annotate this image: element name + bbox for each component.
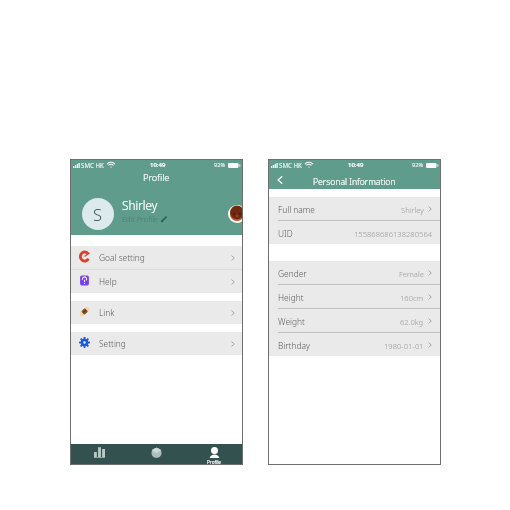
staticText: 10:49 — [150, 161, 166, 169]
button[interactable]: Gender — [269, 261, 440, 284]
button[interactable]: Full name — [269, 197, 440, 220]
button[interactable]: Pet profile — [228, 205, 242, 223]
button[interactable]: Weight — [269, 309, 440, 332]
button[interactable]: Back — [269, 170, 291, 189]
button[interactable]: UID — [269, 221, 440, 244]
button[interactable]: Birthday — [269, 333, 440, 356]
button[interactable]: Statistics — [71, 444, 128, 464]
staticText: 10:49 — [348, 161, 364, 169]
staticText: Birthday — [278, 340, 310, 351]
staticText: Shirley — [401, 205, 424, 215]
button[interactable]: Setting — [71, 332, 242, 355]
staticText: Edit Profile — [122, 214, 158, 224]
staticText: S — [93, 203, 103, 225]
staticText: 160cm — [400, 293, 424, 303]
staticText: UID — [278, 228, 293, 239]
staticText: Profile — [207, 459, 221, 464]
staticText: SMC HK — [279, 161, 302, 169]
button[interactable]: Explore — [128, 444, 185, 464]
staticText: SMC HK — [81, 161, 104, 169]
button[interactable]: Link — [71, 301, 242, 324]
staticText: Gender — [278, 268, 307, 279]
staticText: Height — [278, 292, 304, 303]
staticText: 92% — [214, 161, 226, 169]
staticText: 62.0kg — [400, 317, 424, 327]
button[interactable]: Help — [71, 270, 242, 293]
staticText: 1980-01-01 — [384, 341, 424, 351]
staticText: Profile — [143, 171, 170, 184]
staticText: Full name — [278, 204, 315, 215]
staticText: 92% — [412, 161, 424, 169]
staticText: Personal Information — [313, 176, 396, 188]
staticText: Link — [99, 307, 115, 318]
staticText: Shirley — [122, 197, 158, 213]
staticText: Setting — [99, 338, 126, 349]
button[interactable]: Goal setting — [71, 246, 242, 269]
staticText: Goal setting — [99, 252, 145, 263]
button[interactable]: Height — [269, 285, 440, 308]
button[interactable]: Profile — [185, 444, 242, 464]
staticText: 155868686138280564 — [354, 229, 433, 239]
staticText: Weight — [278, 316, 305, 327]
staticText: Female — [399, 269, 424, 279]
staticText: Help — [99, 276, 117, 287]
